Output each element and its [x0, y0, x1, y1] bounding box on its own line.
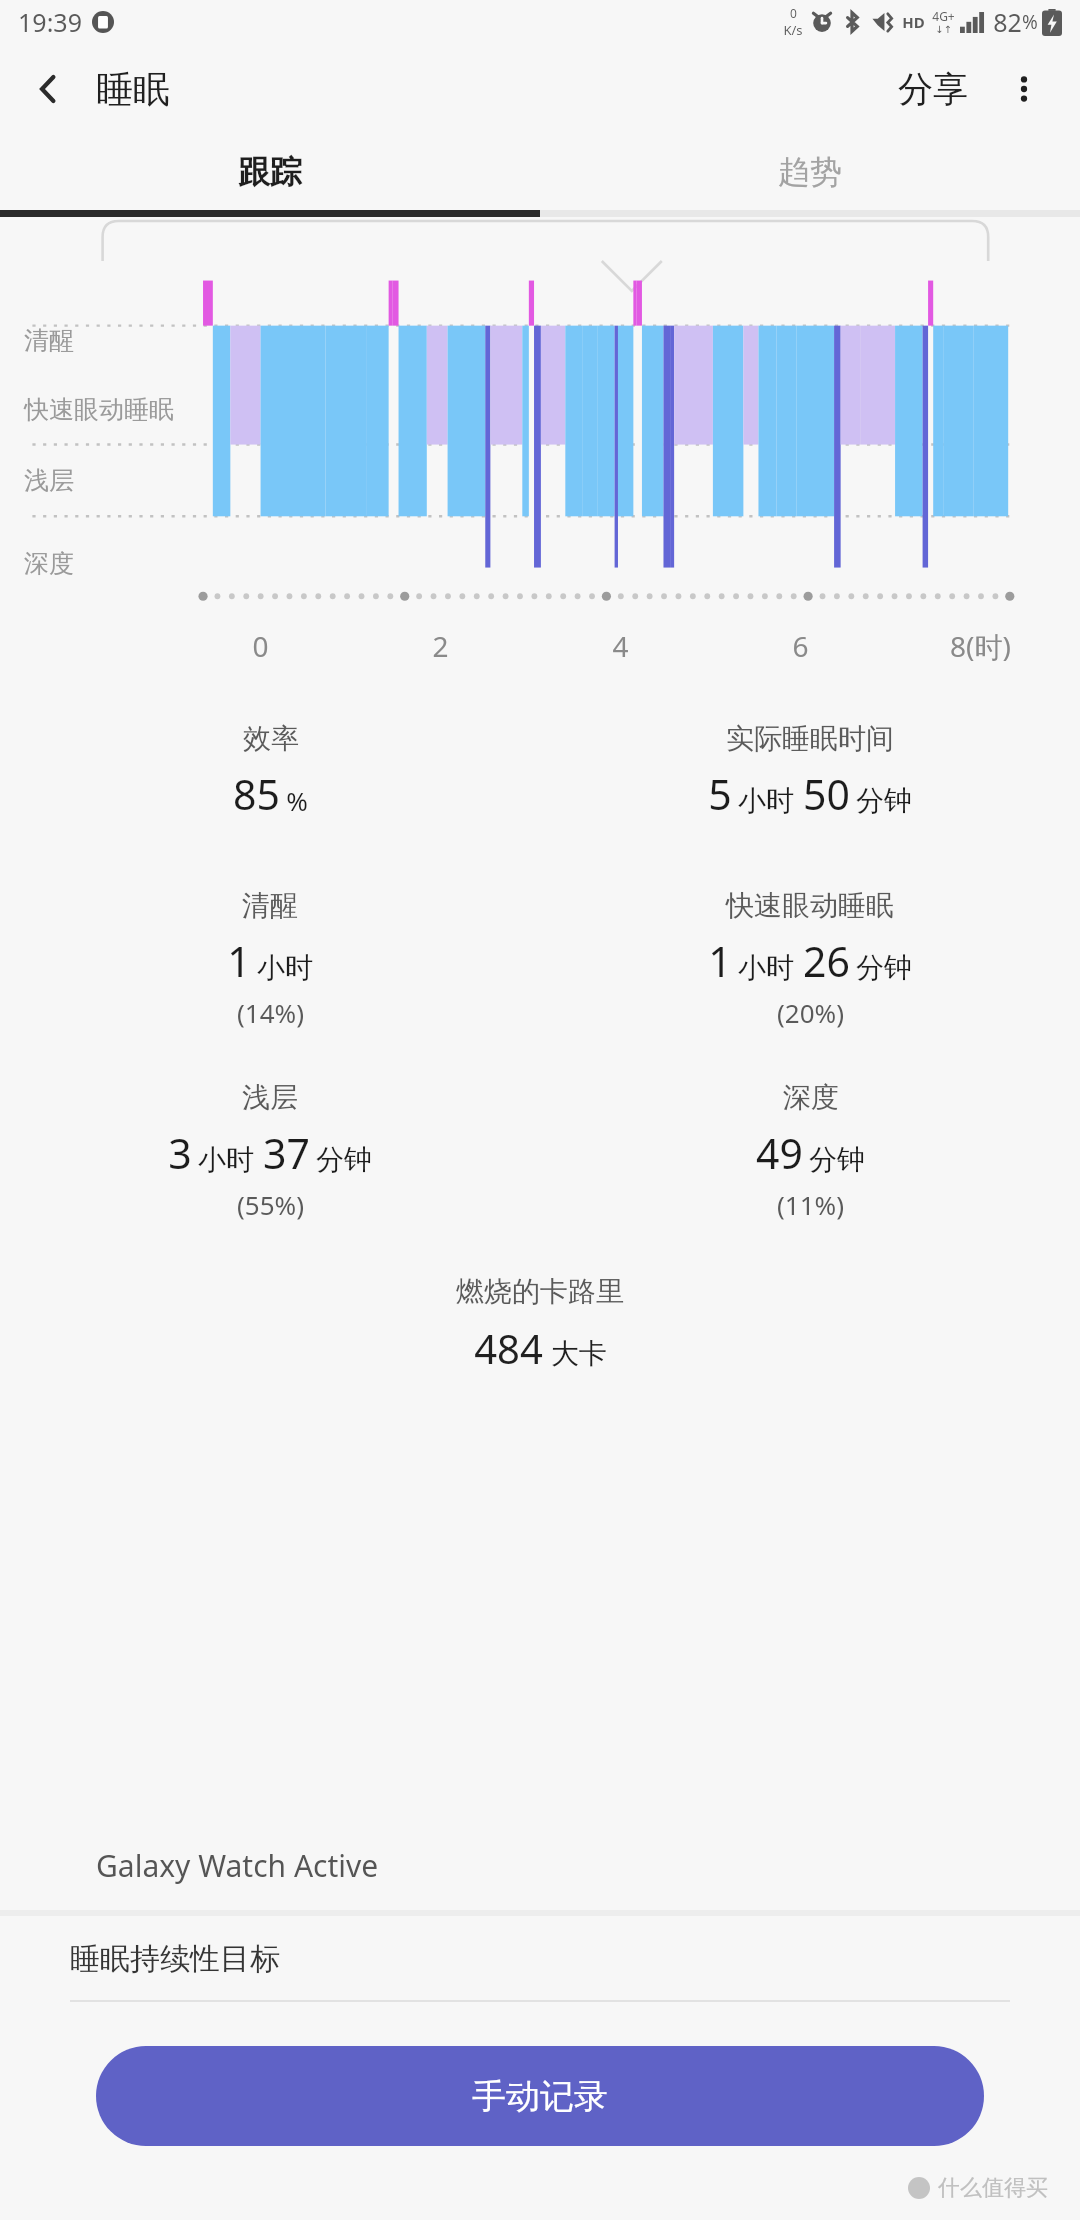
- button[interactable]: 睡眠持续性目标: [0, 1916, 1080, 2002]
- staticText: 85: [233, 766, 280, 822]
- staticText: 0: [790, 5, 797, 21]
- staticText: 燃烧的卡路里: [456, 1274, 624, 1309]
- button[interactable]: 趋势: [540, 134, 1080, 210]
- staticText: %: [1022, 9, 1038, 35]
- staticText: 82: [993, 5, 1022, 39]
- button[interactable]: 实际睡眠时间: [700, 719, 920, 824]
- staticText: 分享: [898, 67, 968, 111]
- staticText: %: [286, 783, 308, 818]
- staticText: 1: [708, 933, 732, 989]
- button[interactable]: 分享: [884, 53, 982, 125]
- staticText: 50: [803, 766, 850, 822]
- staticText: 49: [756, 1125, 803, 1181]
- button[interactable]: 燃烧的卡路里: [0, 1274, 1080, 1375]
- staticText: 19:39: [18, 5, 82, 39]
- staticText: 5: [708, 766, 732, 822]
- staticText: 深度: [783, 1080, 839, 1115]
- staticText: 小时: [738, 950, 794, 985]
- staticText: 1: [227, 933, 251, 989]
- staticText: 效率: [243, 721, 299, 756]
- staticText: 分钟: [809, 1142, 865, 1177]
- staticText: K/s: [783, 21, 803, 39]
- button[interactable]: 手动记录: [96, 2046, 984, 2146]
- button[interactable]: 清醒: [219, 886, 321, 1032]
- staticText: 8(时): [950, 627, 1011, 665]
- staticText: (20%): [777, 995, 844, 1030]
- staticText: 分钟: [856, 783, 912, 818]
- staticText: (55%): [237, 1187, 304, 1222]
- staticText: (11%): [777, 1187, 844, 1222]
- staticText: 浅层: [24, 465, 74, 496]
- staticText: HD: [902, 12, 925, 32]
- staticText: 37: [263, 1125, 310, 1181]
- button[interactable]: 跟踪: [0, 134, 540, 210]
- staticText: 跟踪: [238, 152, 302, 192]
- button[interactable]: 深度: [748, 1078, 873, 1224]
- staticText: 清醒: [242, 888, 298, 923]
- staticText: 小时: [198, 1142, 254, 1177]
- staticText: 睡眠: [96, 66, 170, 113]
- button[interactable]: 浅层: [160, 1078, 380, 1224]
- staticText: 手动记录: [472, 2075, 608, 2118]
- staticText: 3: [168, 1125, 192, 1181]
- staticText: 快速眼动睡眠: [24, 394, 174, 425]
- staticText: 26: [803, 933, 850, 989]
- staticText: 快速眼动睡眠: [726, 888, 894, 923]
- staticText: 小时: [738, 783, 794, 818]
- staticText: 小时: [257, 950, 313, 985]
- staticText: 分钟: [316, 1142, 372, 1177]
- staticText: ↓↑: [935, 24, 952, 36]
- staticText: 浅层: [242, 1080, 298, 1115]
- staticText: 4: [612, 627, 629, 665]
- button[interactable]: Back: [0, 44, 96, 134]
- staticText: 484: [474, 1321, 543, 1375]
- button[interactable]: More options: [982, 47, 1066, 131]
- staticText: 趋势: [778, 152, 842, 192]
- staticText: 分钟: [856, 950, 912, 985]
- staticText: 清醒: [24, 325, 74, 356]
- button[interactable]: 效率: [225, 719, 316, 824]
- staticText: 什么值得买: [938, 2174, 1048, 2202]
- staticText: 2: [432, 627, 449, 665]
- staticText: Galaxy Watch Active: [96, 1845, 379, 1886]
- staticText: 实际睡眠时间: [726, 721, 894, 756]
- staticText: 深度: [24, 548, 74, 579]
- staticText: 大卡: [551, 1336, 607, 1371]
- staticText: (14%): [237, 995, 304, 1030]
- staticText: 6: [792, 627, 809, 665]
- staticText: 睡眠持续性目标: [70, 1940, 280, 1978]
- button[interactable]: 快速眼动睡眠: [700, 886, 920, 1032]
- staticText: 4G+: [932, 8, 955, 24]
- staticText: 0: [252, 627, 269, 665]
